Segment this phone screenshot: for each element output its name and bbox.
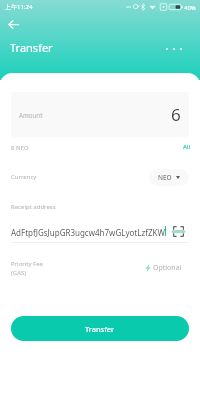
button[interactable]: Back — [3, 14, 23, 34]
staticText: Receipt address — [11, 203, 56, 211]
staticText: Transfer — [10, 40, 53, 55]
staticText: All — [183, 143, 190, 151]
staticText: 6 — [171, 103, 181, 126]
staticText: Transfer — [85, 324, 115, 334]
button[interactable]: Optional — [145, 260, 190, 276]
staticText: Priority Fee — [11, 260, 43, 268]
staticText: Optional — [153, 263, 182, 273]
staticText: 上午11:24 — [5, 3, 33, 11]
button[interactable]: Scan QR code — [168, 221, 189, 242]
button[interactable]: NEO — [149, 169, 189, 186]
button[interactable]: Transfer — [11, 316, 189, 341]
button[interactable]: All — [179, 140, 193, 154]
button[interactable]: More options — [162, 40, 186, 58]
staticText: (GAS) — [11, 269, 27, 277]
staticText: AdFtpfJGsJupGR3ugcw4h7wGLyotLzfZKW — [11, 227, 165, 238]
button[interactable]: Amount — [11, 92, 189, 137]
staticText: Amount — [19, 111, 43, 119]
staticText: 40% — [184, 4, 196, 12]
staticText: Currency — [11, 173, 37, 181]
staticText: NEO — [158, 173, 172, 182]
staticText: 6 NEO — [11, 144, 29, 152]
